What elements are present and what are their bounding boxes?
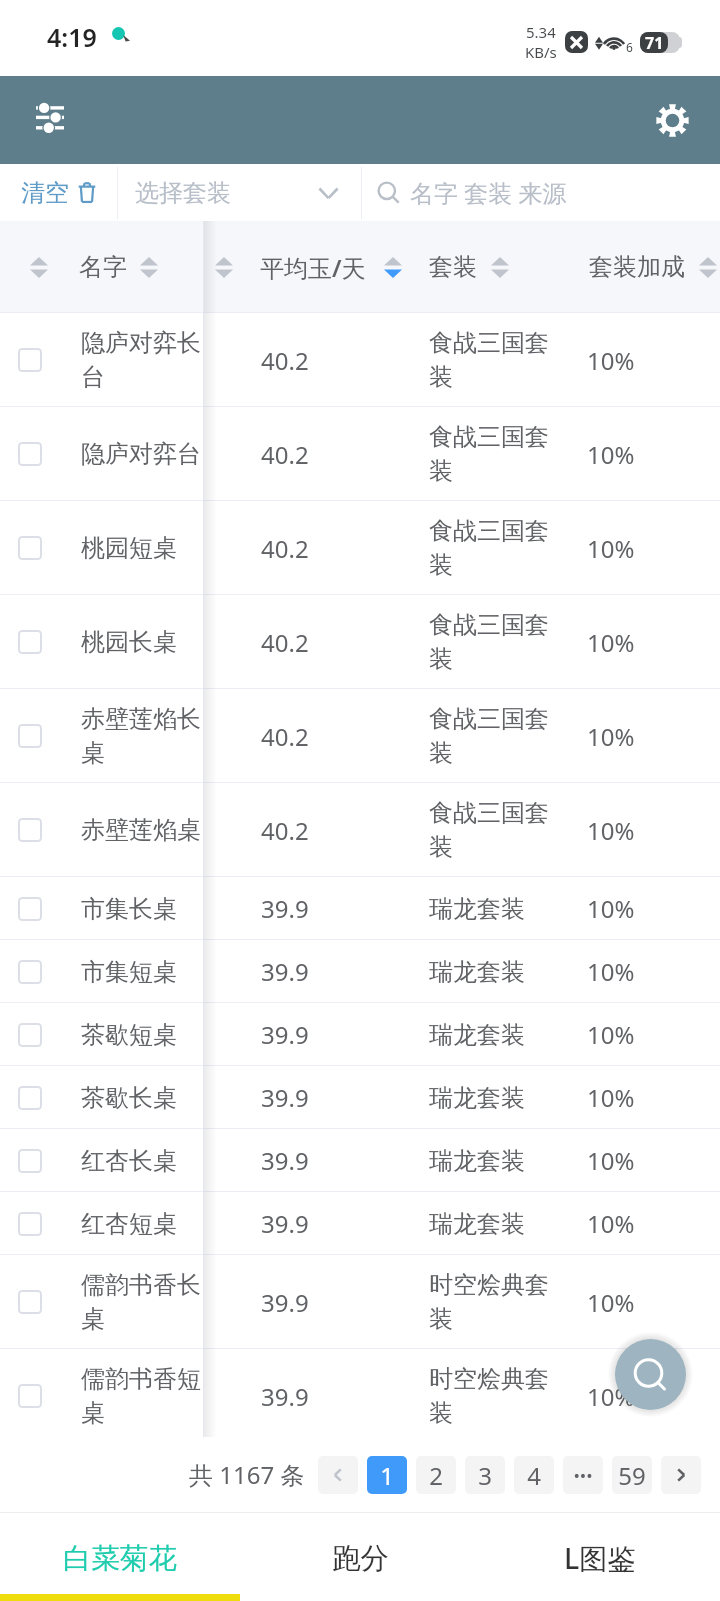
button[interactable]: 红杏短桌 bbox=[0, 1192, 720, 1255]
staticText: 时空烩典套装 bbox=[429, 1364, 552, 1429]
staticText: 40.2 bbox=[261, 720, 309, 753]
staticText: 瑞龙套装 bbox=[429, 957, 552, 987]
staticText: 食战三国套装 bbox=[429, 328, 552, 393]
button[interactable]: 白菜菊花 bbox=[0, 1518, 240, 1599]
button[interactable]: 名字 bbox=[0, 221, 203, 313]
staticText: 10% bbox=[587, 1018, 635, 1051]
staticText: 39.9 bbox=[261, 1380, 309, 1413]
staticText: 儒韵书香短桌 bbox=[81, 1364, 203, 1429]
staticText: 食战三国套装 bbox=[429, 422, 552, 487]
button[interactable]: 套装加成 bbox=[556, 221, 720, 313]
button[interactable]: 4 bbox=[514, 1456, 554, 1494]
staticText: 10% bbox=[587, 1144, 635, 1177]
button[interactable]: Filter bbox=[22, 92, 78, 148]
button[interactable]: 市集短桌 bbox=[0, 940, 720, 1003]
staticText: 瑞龙套装 bbox=[429, 1209, 552, 1239]
staticText: 59 bbox=[618, 1459, 646, 1492]
staticText: 40.2 bbox=[261, 814, 309, 847]
button[interactable]: Settings bbox=[640, 88, 704, 152]
staticText: 5.34 bbox=[526, 22, 556, 42]
staticText: 红杏长桌 bbox=[81, 1146, 203, 1176]
staticText: 10% bbox=[587, 1081, 635, 1114]
staticText: 39.9 bbox=[261, 955, 309, 988]
staticText: 食战三国套装 bbox=[429, 704, 552, 769]
button[interactable]: 市集长桌 bbox=[0, 877, 720, 940]
staticText: 名字 bbox=[79, 252, 127, 282]
staticText: 名字 套装 来源 bbox=[410, 176, 567, 209]
staticText: 39.9 bbox=[261, 1286, 309, 1319]
staticText: 套装 bbox=[429, 252, 477, 282]
button[interactable]: L图鉴 bbox=[480, 1518, 720, 1599]
staticText: 3 bbox=[478, 1459, 492, 1492]
button[interactable] bbox=[661, 1456, 701, 1494]
staticText: 瑞龙套装 bbox=[429, 1146, 552, 1176]
staticText: 桃园短桌 bbox=[81, 533, 203, 563]
staticText: 赤壁莲焰桌 bbox=[81, 815, 203, 845]
staticText: 10% bbox=[587, 814, 635, 847]
staticText: 瑞龙套装 bbox=[429, 1020, 552, 1050]
button[interactable]: 茶歇长桌 bbox=[0, 1066, 720, 1129]
staticText: 食战三国套装 bbox=[429, 798, 552, 863]
button[interactable]: 桃园长桌 bbox=[0, 595, 720, 689]
button[interactable]: ••• bbox=[563, 1456, 603, 1494]
staticText: 6 bbox=[626, 39, 633, 55]
button[interactable]: 红杏长桌 bbox=[0, 1129, 720, 1192]
button[interactable]: 套装 bbox=[407, 221, 556, 313]
button[interactable]: 茶歇短桌 bbox=[0, 1003, 720, 1066]
staticText: 茶歇短桌 bbox=[81, 1020, 203, 1050]
staticText: 食战三国套装 bbox=[429, 516, 552, 581]
button[interactable]: 赤壁莲焰长桌 bbox=[0, 689, 720, 783]
staticText: 2 bbox=[429, 1459, 443, 1492]
staticText: 套装加成 bbox=[589, 252, 685, 282]
staticText: 10% bbox=[587, 1380, 635, 1413]
button[interactable]: 跑分 bbox=[240, 1518, 480, 1599]
button[interactable] bbox=[318, 1456, 358, 1494]
button[interactable]: 名字 套装 来源 bbox=[362, 164, 720, 221]
staticText: 赤壁莲焰长桌 bbox=[81, 704, 203, 769]
button[interactable]: 平均玉/天 bbox=[203, 221, 407, 313]
staticText: 4:19 bbox=[47, 20, 97, 54]
staticText: 市集短桌 bbox=[81, 957, 203, 987]
staticText: 隐庐对弈台 bbox=[81, 439, 203, 469]
staticText: 瑞龙套装 bbox=[429, 1083, 552, 1113]
staticText: 40.2 bbox=[261, 438, 309, 471]
button[interactable]: 3 bbox=[465, 1456, 505, 1494]
staticText: 10% bbox=[587, 532, 635, 565]
button[interactable]: 清空 bbox=[0, 164, 117, 221]
button[interactable]: 儒韵书香长桌 bbox=[0, 1255, 720, 1349]
staticText: 市集长桌 bbox=[81, 894, 203, 924]
staticText: 跑分 bbox=[332, 1541, 389, 1577]
staticText: 10% bbox=[587, 626, 635, 659]
button[interactable]: Search bbox=[615, 1339, 686, 1410]
staticText: 平均玉/天 bbox=[260, 251, 366, 284]
button[interactable]: 桃园短桌 bbox=[0, 501, 720, 595]
staticText: ••• bbox=[573, 1464, 593, 1487]
staticText: 清空 bbox=[21, 178, 69, 208]
staticText: 40.2 bbox=[261, 626, 309, 659]
staticText: 39.9 bbox=[261, 1144, 309, 1177]
staticText: 71 bbox=[645, 32, 664, 53]
staticText: 10% bbox=[587, 720, 635, 753]
button[interactable]: 选择套装 bbox=[118, 164, 361, 221]
button[interactable]: 赤壁莲焰桌 bbox=[0, 783, 720, 877]
staticText: 10% bbox=[587, 1286, 635, 1319]
staticText: KB/s bbox=[525, 42, 557, 62]
button[interactable]: 隐庐对弈长台 bbox=[0, 313, 720, 407]
staticText: 时空烩典套装 bbox=[429, 1270, 552, 1335]
staticText: 1 bbox=[380, 1459, 394, 1492]
staticText: 桃园长桌 bbox=[81, 627, 203, 657]
staticText: 红杏短桌 bbox=[81, 1209, 203, 1239]
staticText: 39.9 bbox=[261, 892, 309, 925]
button[interactable]: 2 bbox=[416, 1456, 456, 1494]
button[interactable]: 儒韵书香短桌 bbox=[0, 1349, 720, 1443]
staticText: 儒韵书香长桌 bbox=[81, 1270, 203, 1335]
staticText: 10% bbox=[587, 344, 635, 377]
button[interactable]: 59 bbox=[612, 1456, 652, 1494]
staticText: 共 1167 条 bbox=[189, 1458, 305, 1491]
staticText: L图鉴 bbox=[564, 1539, 637, 1578]
staticText: 10% bbox=[587, 955, 635, 988]
staticText: 隐庐对弈长台 bbox=[81, 328, 203, 393]
staticText: 40.2 bbox=[261, 344, 309, 377]
button[interactable]: 隐庐对弈台 bbox=[0, 407, 720, 501]
button[interactable]: 1 bbox=[367, 1456, 407, 1494]
